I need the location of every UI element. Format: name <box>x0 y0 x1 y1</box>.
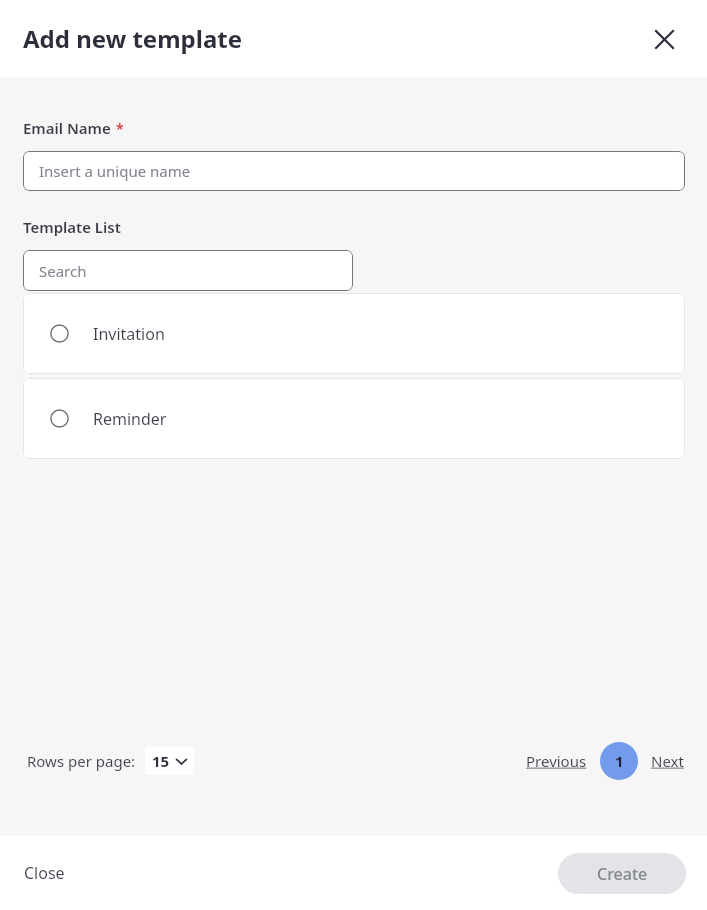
staticText: 15 <box>152 751 170 771</box>
button[interactable]: 1 <box>600 742 638 780</box>
button[interactable]: Next <box>651 751 684 771</box>
staticText: Rows per page: <box>27 751 136 771</box>
staticText: Template List <box>23 217 121 237</box>
staticText: Insert a unique name <box>39 161 191 181</box>
button[interactable]: Previous <box>526 751 587 771</box>
button[interactable]: Close <box>13 853 76 893</box>
staticText: Previous <box>526 751 587 771</box>
staticText: Invitation <box>93 323 165 345</box>
staticText: Add new template <box>23 22 242 55</box>
button[interactable]: Invitation <box>23 293 685 374</box>
staticText: Reminder <box>93 408 167 430</box>
staticText: Search <box>39 261 87 281</box>
staticText: * <box>116 119 124 138</box>
staticText: Create <box>597 863 648 885</box>
staticText: 1 <box>615 751 624 771</box>
button[interactable]: Create <box>558 853 686 894</box>
button[interactable]: Search <box>23 250 353 291</box>
button[interactable]: Insert a unique name <box>23 151 685 191</box>
button[interactable]: 15 <box>145 747 194 775</box>
staticText: Close <box>24 862 65 884</box>
button[interactable]: Close dialog <box>647 22 681 56</box>
button[interactable]: Reminder <box>23 378 685 459</box>
staticText: Email Name <box>23 118 111 138</box>
staticText: Next <box>651 751 684 771</box>
